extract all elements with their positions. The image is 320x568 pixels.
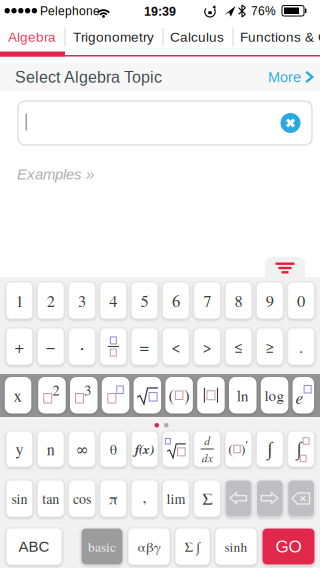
button[interactable]: fraction [100,328,127,365]
button[interactable]: 4 [100,282,127,319]
button[interactable]: n [37,431,64,467]
staticText: Trigonometry [73,29,154,45]
staticText: Calculus [170,29,224,45]
button[interactable]: Clear [280,113,300,133]
staticText: ) [184,384,190,407]
staticText: Σ ∫ [184,537,200,555]
button[interactable]: comma [131,480,158,517]
button[interactable]: nth root [162,431,189,467]
staticText: lim [166,489,185,508]
button[interactable]: x [5,377,31,413]
button[interactable]: tan [37,480,64,517]
button[interactable]: 7 [194,282,221,319]
button[interactable]: pi [100,480,127,517]
button[interactable]: delete [288,480,314,517]
button[interactable]: Examples » [17,166,94,183]
button[interactable]: lim [162,480,189,517]
button[interactable]: ≥ [256,328,283,365]
button[interactable]: < [162,328,189,365]
staticText: 4 [109,289,117,311]
staticText: · [79,333,84,360]
staticText: 7 [203,289,211,311]
button[interactable]: More [268,63,314,91]
button[interactable]: integral [256,431,283,467]
staticText: + [14,335,24,358]
staticText: , [143,486,147,507]
button[interactable]: Algebra [8,24,56,50]
staticText: 9 [266,289,274,311]
staticText: ′ [245,438,248,452]
button[interactable]: parentheses [165,377,193,413]
button[interactable]: power [102,377,129,413]
button[interactable]: − [37,328,64,365]
staticText: More [268,69,301,85]
button[interactable]: log [261,377,288,413]
staticText: 6 [172,289,180,311]
button[interactable]: y [6,431,33,467]
button[interactable]: prime [225,431,252,467]
button[interactable]: e to power [293,377,314,413]
button[interactable]: greek [128,528,170,565]
button[interactable]: Hide keyboard [265,257,305,283]
button[interactable]: · [69,328,95,365]
staticText: π [109,488,118,509]
staticText: ∞ [75,438,88,460]
staticText: ln [237,385,249,406]
staticText: 1 [15,289,23,311]
button[interactable]: square [38,377,66,413]
button[interactable]: 9 [256,282,283,319]
button[interactable]: derivative [194,431,221,467]
button[interactable]: hyperbolic [215,528,257,565]
staticText: sinh [224,537,247,555]
button[interactable]: operators [175,528,210,565]
staticText: Algebra [8,29,56,45]
staticText: ( [228,440,233,458]
button[interactable]: ln [229,377,256,413]
button[interactable]: cursor right [256,480,283,517]
button[interactable]: cube [70,377,97,413]
button[interactable]: > [194,328,221,365]
button[interactable]: 0 [288,282,314,319]
staticText: Select Algebra Topic [15,68,162,86]
button[interactable]: . [288,328,314,365]
button[interactable]: 6 [162,282,189,319]
button[interactable]: Functions & Gr [240,24,320,50]
staticText: tan [42,489,59,508]
button[interactable]: basic keyboard [81,528,123,565]
button[interactable]: Calculus [170,24,224,50]
button[interactable]: cos [69,480,95,517]
button[interactable]: theta [100,431,127,467]
button[interactable]: Trigonometry [73,24,154,50]
button[interactable]: sin [6,480,33,517]
staticText: sin [11,489,27,508]
button[interactable]: + [6,328,33,365]
button[interactable]: letters [6,528,62,565]
button[interactable]: 1 [6,282,33,319]
staticText: 2 [52,380,60,400]
staticText: 3 [78,289,86,311]
button[interactable]: sum [194,480,221,517]
staticText: Σ [202,488,212,509]
button[interactable]: definite integral [288,431,314,467]
staticText: dx [202,450,213,465]
staticText: 3 [84,380,92,400]
staticText: ) [241,440,246,458]
button[interactable]: cursor left [225,480,252,517]
button[interactable]: 3 [69,282,95,319]
button[interactable]: 2 [37,282,64,319]
staticText: ABC [18,538,49,555]
staticText: d [204,433,210,448]
button[interactable]: absolute value [197,377,225,413]
button[interactable]: square root [134,377,161,413]
staticText: 76% [251,4,276,18]
staticText: Pelephone [40,4,100,18]
button[interactable]: 8 [225,282,252,319]
staticText: f(x) [135,439,154,458]
button[interactable]: 5 [131,282,158,319]
button[interactable]: ≤ [225,328,252,365]
button[interactable]: function [131,431,158,467]
button[interactable]: infinity [69,431,95,467]
button[interactable]: = [131,328,158,365]
staticText: ≤ [234,336,243,357]
button[interactable]: Go [262,528,315,565]
